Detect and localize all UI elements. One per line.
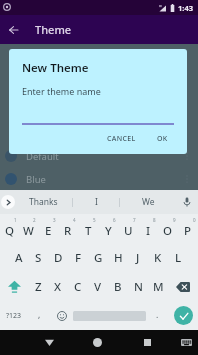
button[interactable]: Backspace [168, 272, 198, 301]
button[interactable]: J [128, 243, 148, 272]
button[interactable]: Y [98, 214, 118, 243]
staticText: X [54, 279, 62, 295]
button[interactable]: We [120, 190, 176, 214]
staticText: U [124, 223, 133, 239]
staticText: 7 [133, 217, 136, 223]
staticText: A [15, 250, 23, 266]
staticText: Z [35, 279, 42, 295]
staticText: R [64, 223, 72, 239]
button[interactable]: W [19, 214, 38, 243]
staticText: , [38, 309, 41, 321]
button[interactable]: T [78, 214, 98, 243]
button[interactable]: Default [0, 144, 198, 168]
staticText: Default [26, 150, 59, 163]
button[interactable]: Voice input [176, 190, 198, 214]
staticText: S [35, 250, 42, 266]
button[interactable]: L [168, 243, 188, 272]
staticText: 2 [33, 217, 36, 223]
staticText: OK [157, 134, 168, 144]
staticText: E [45, 223, 52, 239]
staticText: C [74, 279, 82, 295]
button[interactable]: O [158, 214, 178, 243]
staticText: H [114, 250, 123, 266]
button[interactable]: More suggestions [0, 190, 15, 214]
button[interactable]: . [146, 301, 168, 330]
staticText: 0 [193, 217, 196, 223]
button[interactable]: V [88, 272, 108, 301]
staticText: I [146, 223, 151, 239]
staticText: 5 [93, 217, 96, 223]
button[interactable]: H [108, 243, 128, 272]
staticText: CANCEL [107, 134, 136, 144]
button[interactable]: Blue [0, 167, 198, 191]
button[interactable]: K [148, 243, 168, 272]
staticText: Y [105, 223, 112, 239]
staticText: 1 [14, 217, 17, 223]
button[interactable]: M [148, 272, 168, 301]
staticText: 9 [173, 217, 176, 223]
button[interactable]: Hide keyboard [35, 330, 63, 355]
button[interactable]: CANCEL [103, 130, 140, 148]
staticText: K [154, 250, 162, 266]
staticText: V [94, 279, 102, 295]
staticText: Enter theme name [22, 85, 101, 97]
staticText: N [134, 279, 143, 295]
staticText: M [153, 279, 164, 295]
button[interactable]: A [9, 243, 28, 272]
staticText: New Theme [22, 60, 89, 76]
staticText: I [95, 196, 98, 208]
button[interactable]: Space [73, 301, 146, 330]
staticText: B [114, 279, 122, 295]
button[interactable]: U [118, 214, 138, 243]
button[interactable]: Thanks [15, 190, 72, 214]
button[interactable]: Z [29, 272, 48, 301]
button[interactable]: E [38, 214, 58, 243]
button[interactable]: OK [153, 130, 172, 148]
button[interactable]: Shift [0, 272, 29, 301]
button[interactable]: B [108, 272, 128, 301]
staticText: T [85, 223, 92, 239]
button[interactable]: I [73, 190, 119, 214]
button[interactable]: Recents [133, 330, 161, 355]
staticText: Blue [26, 173, 46, 186]
staticText: F [75, 250, 82, 266]
staticText: L [175, 250, 182, 266]
staticText: ?123 [6, 311, 22, 321]
staticText: 4 [73, 217, 76, 223]
button[interactable]: Back [1, 15, 26, 44]
button[interactable]: Q [0, 214, 19, 243]
button[interactable]: R [58, 214, 78, 243]
staticText: Q [5, 223, 15, 239]
staticText: O [163, 223, 173, 239]
staticText: Thanks [29, 196, 58, 208]
button[interactable]: Enter [168, 301, 198, 330]
staticText: We [142, 196, 155, 208]
staticText: J [136, 250, 140, 266]
button[interactable]: I [138, 214, 158, 243]
button[interactable]: F [68, 243, 88, 272]
staticText: D [54, 250, 63, 266]
button[interactable]: G [88, 243, 108, 272]
staticText: 6 [113, 217, 116, 223]
button[interactable]: P [178, 214, 198, 243]
staticText: W [23, 223, 34, 239]
button[interactable]: S [28, 243, 48, 272]
button[interactable]: ?123 [0, 301, 28, 330]
button[interactable]: Emoji [50, 301, 73, 330]
staticText: G [94, 250, 103, 266]
button[interactable]: X [48, 272, 68, 301]
staticText: Theme [35, 22, 72, 37]
staticText: P [184, 223, 192, 239]
button[interactable]: C [68, 272, 88, 301]
button[interactable]: D [48, 243, 68, 272]
staticText: 3 [53, 217, 56, 223]
staticText: . [156, 309, 159, 321]
staticText: 1:43 [178, 3, 193, 13]
button[interactable]: Home [83, 330, 111, 355]
staticText: 8 [153, 217, 156, 223]
button[interactable]: N [128, 272, 148, 301]
button[interactable]: Switch keyboard [174, 330, 198, 355]
button[interactable]: , [28, 301, 50, 330]
